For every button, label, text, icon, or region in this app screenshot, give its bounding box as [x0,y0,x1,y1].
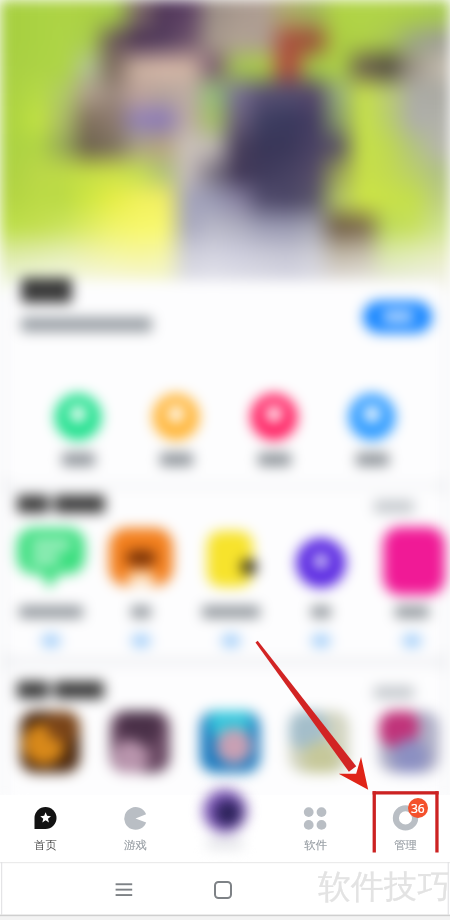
button[interactable]: 发现 [180,795,270,862]
staticText: 软件技巧 [318,866,450,908]
staticText: 管理 [394,838,417,852]
button[interactable]: 软件 [270,795,360,862]
staticText: 首页 [34,838,57,852]
button[interactable]: Home [207,874,239,906]
staticText: 36 [411,800,425,816]
staticText: 游戏 [124,838,147,852]
button[interactable]: Recent apps [108,875,140,907]
button[interactable]: 首页 [0,795,90,862]
button[interactable]: 游戏 [90,795,180,862]
staticText: 软件 [304,838,327,852]
button[interactable]: 管理 [360,795,450,862]
